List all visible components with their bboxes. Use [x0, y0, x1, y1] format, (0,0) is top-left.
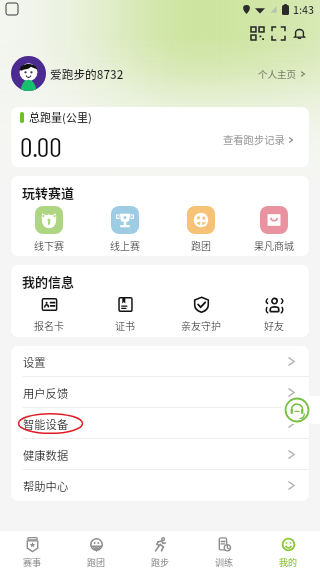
button[interactable]: Scan [268, 23, 289, 44]
staticText: 线下赛 [34, 238, 64, 252]
button[interactable]: 设置 [11, 346, 309, 377]
staticText: 玩转赛道 [22, 183, 75, 202]
staticText: 线上赛 [110, 238, 140, 252]
button[interactable]: 帮助中心 [11, 470, 309, 501]
staticText: 0.00 [20, 129, 62, 163]
staticText: 用户反馈 [23, 385, 69, 401]
staticText: 好友 [264, 318, 284, 332]
staticText: 设置 [23, 354, 46, 370]
staticText: 1:43 [293, 2, 315, 17]
staticText: 跑团 [87, 556, 106, 569]
staticText: 训练 [215, 556, 234, 569]
staticText: 个人主页 [258, 67, 297, 81]
staticText: 总跑量(公里) [29, 109, 92, 125]
button[interactable]: 报名卡 [11, 296, 87, 332]
staticText: 帮助中心 [23, 478, 69, 494]
staticText: 爱跑步的8732 [50, 65, 124, 82]
button[interactable]: 线下赛 [11, 206, 87, 252]
button[interactable]: 跑团 [64, 531, 128, 570]
button[interactable]: 赛事 [0, 531, 64, 570]
button[interactable]: 线上赛 [87, 206, 163, 252]
button[interactable]: 爱跑步的8732 [11, 52, 307, 95]
staticText: 赛事 [23, 556, 42, 569]
button[interactable]: 我的 [256, 531, 320, 570]
button[interactable]: 健康数据 [11, 439, 309, 470]
button[interactable]: Customer service [283, 396, 311, 424]
button[interactable]: 证书 [87, 296, 163, 332]
staticText: 我的 [279, 556, 298, 569]
staticText: 报名卡 [34, 318, 64, 332]
button[interactable]: 查看跑步记录 [223, 132, 295, 147]
button[interactable]: 果凡商城 [239, 206, 309, 252]
button[interactable]: Notifications [289, 23, 310, 44]
button[interactable]: 智能设备 [11, 408, 309, 439]
staticText: 果凡商城 [254, 238, 294, 252]
button[interactable]: QR code [247, 23, 268, 44]
button[interactable]: 用户反馈 [11, 377, 309, 408]
button[interactable]: 训练 [192, 531, 256, 570]
staticText: 亲友守护 [181, 318, 221, 332]
staticText: 证书 [115, 318, 135, 332]
staticText: 我的信息 [22, 272, 75, 291]
staticText: 智能设备 [23, 416, 69, 432]
staticText: 跑步 [151, 556, 170, 569]
button[interactable]: 跑步 [128, 531, 192, 570]
button[interactable]: 好友 [239, 296, 309, 332]
staticText: 跑团 [191, 238, 211, 252]
button[interactable]: 跑团 [163, 206, 239, 252]
staticText: 查看跑步记录 [223, 132, 285, 147]
staticText: 健康数据 [23, 447, 69, 463]
button[interactable]: 亲友守护 [163, 296, 239, 332]
